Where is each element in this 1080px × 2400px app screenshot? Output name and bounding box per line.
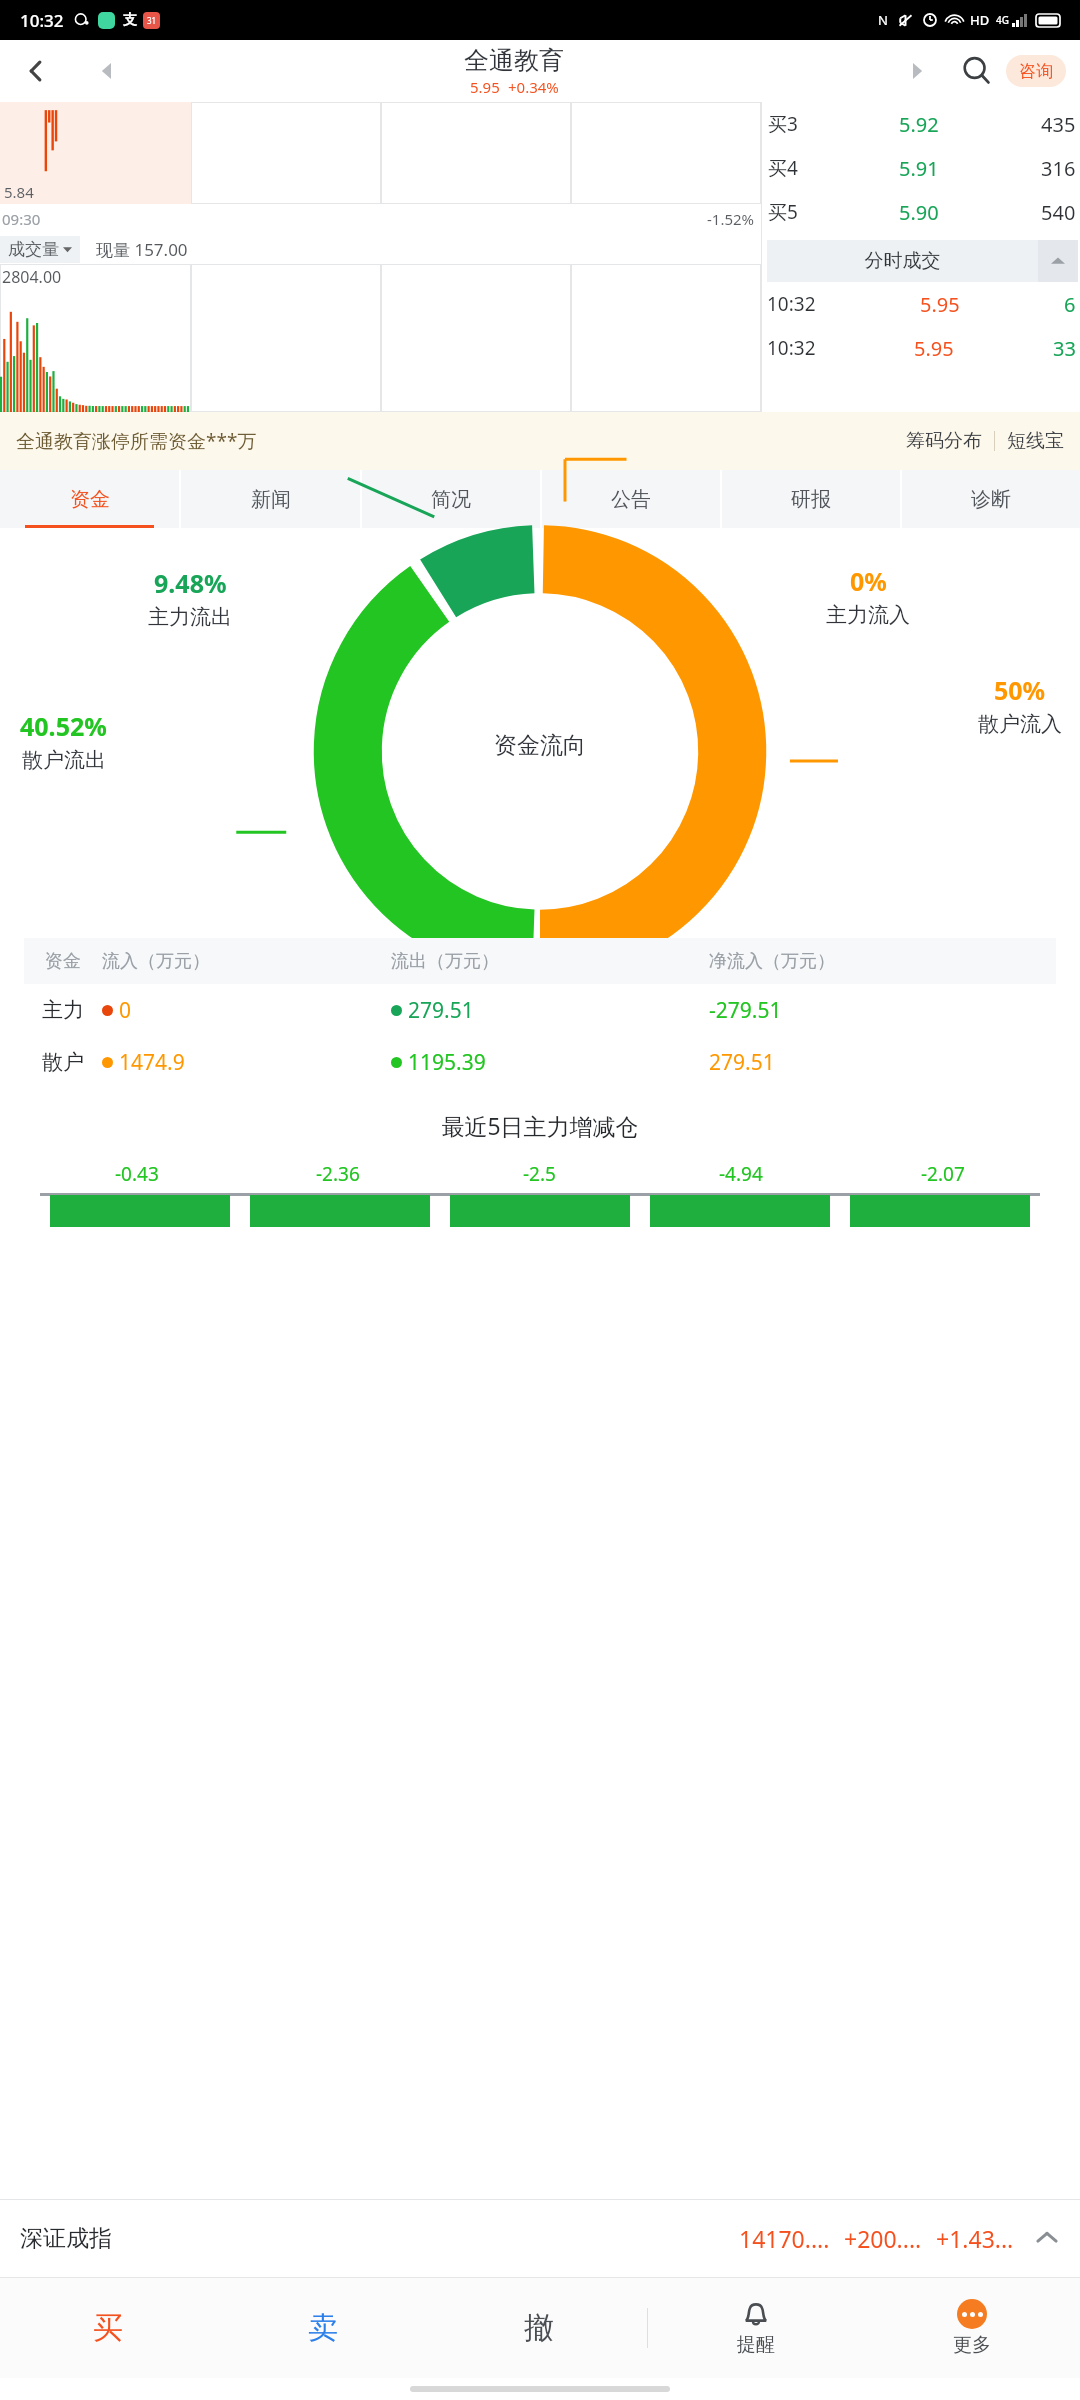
button[interactable]: 咨询 (1019, 55, 1053, 87)
staticText: 撤 (524, 2309, 554, 2347)
button[interactable]: 买 (0, 2278, 215, 2378)
staticText: 净流入（万元） (709, 950, 1056, 973)
button[interactable]: 筹码分布 (906, 429, 982, 453)
staticText: 提醒 (737, 2333, 775, 2357)
staticText: 10:32 (767, 291, 816, 317)
button[interactable]: 深证成指 (20, 2199, 1060, 2277)
button[interactable]: 新闻 (181, 470, 360, 528)
button[interactable]: 买5 (762, 190, 1080, 234)
staticText: 买5 (768, 199, 798, 225)
staticText: 40.52% (20, 709, 107, 743)
staticText: -4.94 (719, 1161, 763, 1187)
button[interactable]: 资金 (0, 470, 179, 528)
staticText: 资金流向 (494, 731, 586, 760)
button[interactable]: 诊断 (902, 470, 1080, 528)
staticText: 主力 (24, 997, 102, 1023)
staticText: 279.51 (709, 1048, 1056, 1077)
staticText: -2.07 (921, 1161, 965, 1187)
button[interactable]: 提醒 (648, 2278, 864, 2378)
staticText: 10:32 (767, 335, 816, 361)
button[interactable]: 撤 (431, 2278, 647, 2378)
button[interactable]: Back (0, 40, 72, 102)
button[interactable]: 成交量 (8, 239, 72, 260)
button[interactable]: 公告 (542, 470, 720, 528)
staticText: -2.5 (523, 1161, 556, 1187)
staticText: 诊断 (971, 487, 1011, 512)
staticText: 1195.39 (408, 1048, 486, 1077)
staticText: 卖 (308, 2309, 338, 2347)
button[interactable]: 研报 (722, 470, 900, 528)
button[interactable]: 简况 (362, 470, 540, 528)
staticText: 5.84 (4, 182, 34, 202)
staticText: 分时成交 (767, 249, 1038, 273)
staticText: 散户流入 (978, 711, 1062, 737)
staticText: -1.52% (707, 209, 755, 229)
staticText: 31 (147, 15, 157, 26)
button[interactable]: 买3 (762, 102, 1080, 146)
staticText: 简况 (431, 487, 471, 512)
button[interactable]: 散户 (24, 1036, 1056, 1088)
staticText: 0 (119, 996, 132, 1025)
staticText: 5.95 (470, 77, 500, 97)
button[interactable]: 主力 (24, 984, 1056, 1036)
staticText: 14170.... (739, 2223, 830, 2254)
button[interactable]: Next stock (886, 40, 948, 102)
staticText: 主力流出 (148, 604, 232, 630)
staticText: 更多 (953, 2333, 991, 2357)
staticText: 316 (1041, 155, 1076, 182)
button[interactable]: 卖 (215, 2278, 431, 2378)
staticText: -2.36 (316, 1161, 360, 1187)
staticText: 主力流入 (826, 602, 910, 628)
staticText: 5.90 (899, 199, 939, 226)
staticText: 买4 (768, 155, 798, 181)
staticText: 流入（万元） (102, 950, 391, 973)
staticText: 33 (1053, 335, 1076, 362)
staticText: 10:32 (20, 9, 64, 32)
staticText: +1.43... (936, 2223, 1014, 2254)
staticText: 5.92 (899, 111, 939, 138)
staticText: 9.48% (154, 566, 227, 600)
staticText: HD (970, 11, 990, 29)
button[interactable]: 分时成交 (767, 240, 1078, 282)
button[interactable]: 买4 (762, 146, 1080, 190)
staticText: 成交量 (8, 239, 59, 260)
staticText: 279.51 (408, 996, 474, 1025)
staticText: 5.95 (914, 335, 954, 362)
staticText: 最近5日主力增减仓 (0, 1110, 1080, 1141)
staticText: 新闻 (251, 487, 291, 512)
staticText: 研报 (791, 487, 831, 512)
staticText: 5.95 (920, 291, 960, 318)
staticText: 深证成指 (20, 2224, 112, 2253)
staticText: 50% (994, 673, 1046, 707)
staticText: 支 (123, 11, 137, 29)
button[interactable]: 更多 (864, 2278, 1080, 2378)
button[interactable]: 10:32 (762, 282, 1080, 326)
staticText: 咨询 (1019, 61, 1053, 82)
staticText: -0.43 (115, 1161, 159, 1187)
button[interactable]: Search (948, 40, 1006, 102)
button[interactable]: 全通教育涨停所需资金***万 (16, 428, 257, 454)
button[interactable]: Previous stock (72, 40, 142, 102)
other: Expand (1034, 2225, 1060, 2251)
staticText: 散户 (24, 1049, 102, 1075)
staticText: 买 (93, 2309, 123, 2347)
staticText: 435 (1041, 111, 1076, 138)
button[interactable]: 短线宝 (1007, 429, 1064, 453)
staticText: N (878, 11, 888, 29)
staticText: 散户流出 (22, 747, 106, 773)
staticText: 6 (1064, 291, 1076, 318)
staticText: 2804.00 (2, 266, 62, 288)
staticText: 流出（万元） (391, 950, 709, 973)
staticText: 资金 (70, 487, 110, 512)
staticText: 全通教育 (464, 45, 564, 76)
staticText: 4G (996, 13, 1009, 27)
staticText: 公告 (611, 487, 651, 512)
button[interactable]: 10:32 (762, 326, 1080, 370)
staticText: 5.91 (899, 155, 939, 182)
staticText: 现量 157.00 (96, 238, 188, 261)
staticText: +0.34% (508, 77, 559, 97)
staticText: -279.51 (709, 996, 1056, 1025)
staticText: +200.... (844, 2223, 922, 2254)
staticText: 1474.9 (119, 1048, 185, 1077)
staticText: 0% (850, 564, 887, 598)
